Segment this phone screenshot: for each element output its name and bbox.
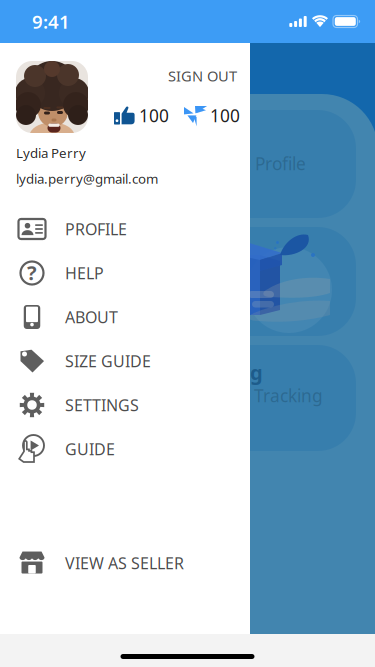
- staticText: 9:41: [32, 9, 70, 34]
- staticText: Lydia Perry: [16, 144, 86, 162]
- staticText: SIGN OUT: [168, 66, 237, 85]
- button[interactable]: SIGN OUT: [148, 60, 250, 91]
- staticText: Profile: [255, 152, 306, 175]
- staticText: SIZE GUIDE: [65, 350, 151, 372]
- button[interactable]: VIEW AS SELLER: [0, 541, 250, 585]
- button[interactable]: ?: [0, 251, 250, 295]
- staticText: ABOUT: [65, 306, 118, 328]
- staticText: SETTINGS: [65, 394, 139, 416]
- staticText: g: [250, 359, 263, 386]
- button[interactable]: PROFILE: [0, 207, 250, 251]
- button[interactable]: SIZE GUIDE: [0, 339, 250, 383]
- staticText: 100: [210, 104, 240, 127]
- staticText: PROFILE: [65, 218, 127, 240]
- staticText: Tracking: [254, 384, 323, 407]
- staticText: VIEW AS SELLER: [65, 552, 184, 574]
- staticText: 100: [139, 104, 169, 127]
- button[interactable]: ABOUT: [0, 295, 250, 339]
- staticText: lydia.perry@gmail.com: [16, 170, 158, 187]
- staticText: ?: [27, 259, 37, 286]
- button[interactable]: SETTINGS: [0, 383, 250, 427]
- staticText: HELP: [65, 262, 104, 284]
- staticText: GUIDE: [65, 438, 115, 460]
- button[interactable]: GUIDE: [0, 427, 250, 471]
